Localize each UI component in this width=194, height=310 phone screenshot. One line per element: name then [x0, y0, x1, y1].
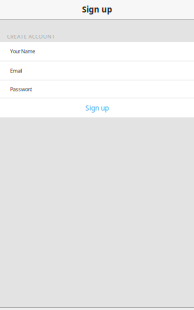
staticText: CREATE ACCOUNT: [7, 33, 55, 40]
button[interactable]: Sign up: [0, 99, 194, 117]
staticText: Your Name: [10, 48, 35, 55]
button[interactable]: Email: [0, 62, 194, 80]
button[interactable]: Password: [0, 81, 194, 98]
button[interactable]: Your Name: [0, 42, 194, 61]
staticText: Sign up: [85, 103, 109, 112]
staticText: Sign up: [82, 4, 112, 15]
staticText: Password: [10, 86, 32, 93]
staticText: Email: [10, 67, 22, 74]
